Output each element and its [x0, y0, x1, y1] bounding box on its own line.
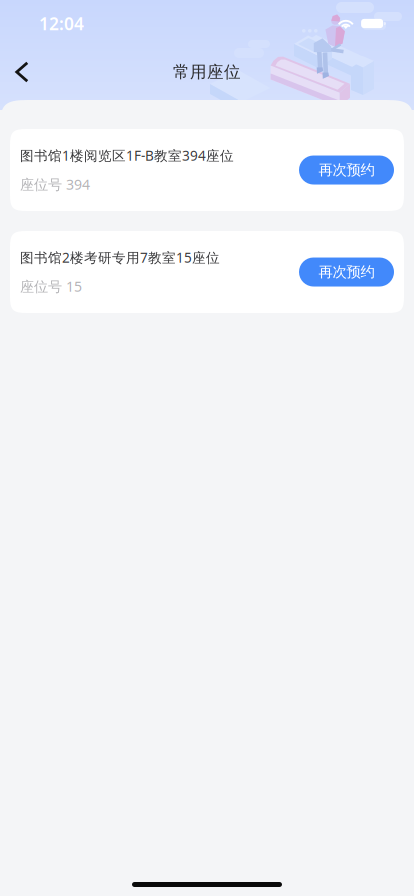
button[interactable]: 再次预约	[299, 257, 394, 286]
staticText: 座位号 15	[20, 277, 82, 296]
staticText: 12:04	[39, 12, 84, 35]
button[interactable]: 再次预约	[299, 155, 394, 184]
staticText: 再次预约	[318, 161, 374, 179]
staticText: 图书馆1楼阅览区1F-B教室394座位	[20, 146, 234, 165]
staticText: 常用座位	[173, 62, 241, 82]
staticText: 再次预约	[318, 263, 374, 281]
staticText: 座位号 394	[20, 175, 90, 194]
button[interactable]: Back	[2, 50, 42, 94]
staticText: 图书馆2楼考研专用7教室15座位	[20, 248, 220, 267]
